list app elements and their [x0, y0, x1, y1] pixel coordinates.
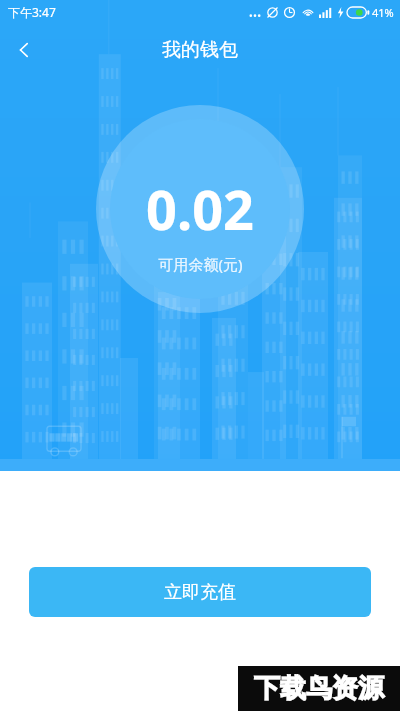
staticText: 下午3:47 — [8, 4, 56, 20]
button[interactable]: Back — [0, 26, 48, 74]
staticText: 0.02 — [146, 172, 254, 246]
staticText: 立即充值 — [164, 581, 236, 604]
button[interactable]: 立即充值 — [29, 567, 371, 617]
staticText: 41% — [372, 5, 394, 20]
staticText: 下载鸟资源 — [254, 672, 384, 705]
staticText: 我的钱包 — [162, 38, 238, 62]
staticText: 可用余额(元) — [158, 254, 243, 274]
